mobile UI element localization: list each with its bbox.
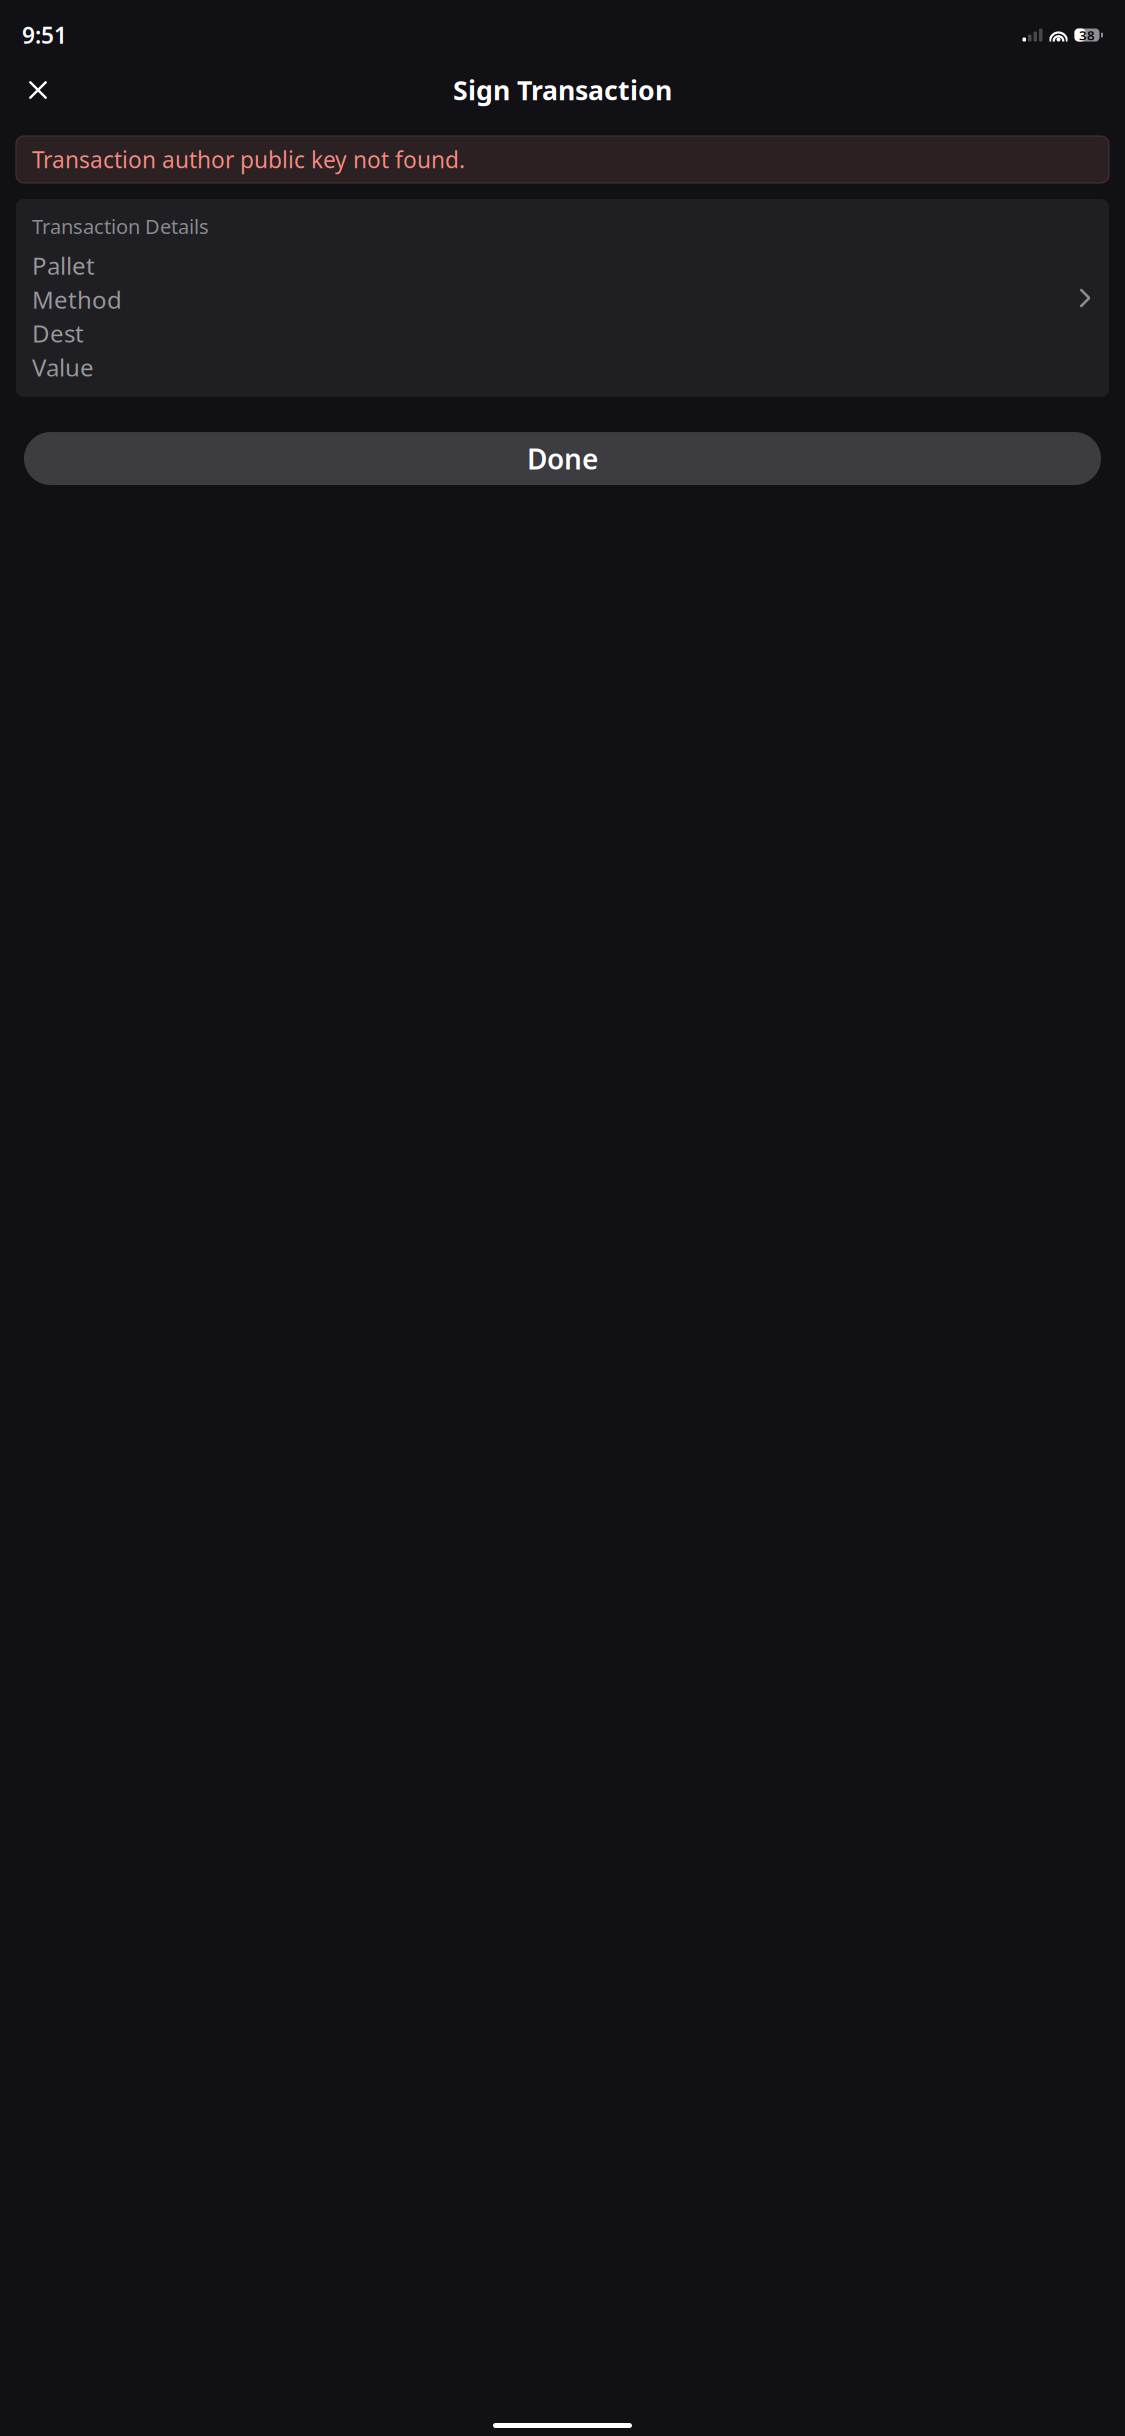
button[interactable]: Transaction Details <box>16 199 1109 397</box>
staticText: 38 <box>1079 26 1095 44</box>
staticText: Done <box>527 440 598 477</box>
staticText: Dest <box>32 317 84 349</box>
staticText: Method <box>32 283 122 315</box>
staticText: Value <box>32 351 94 383</box>
staticText: 9:51 <box>22 20 67 50</box>
staticText: Transaction author public key not found. <box>32 144 465 174</box>
staticText: Pallet <box>32 250 95 281</box>
staticText: Transaction Details <box>32 213 209 240</box>
button[interactable]: Close <box>16 68 60 112</box>
staticText: Sign Transaction <box>453 72 672 108</box>
button[interactable]: Done <box>24 432 1101 485</box>
